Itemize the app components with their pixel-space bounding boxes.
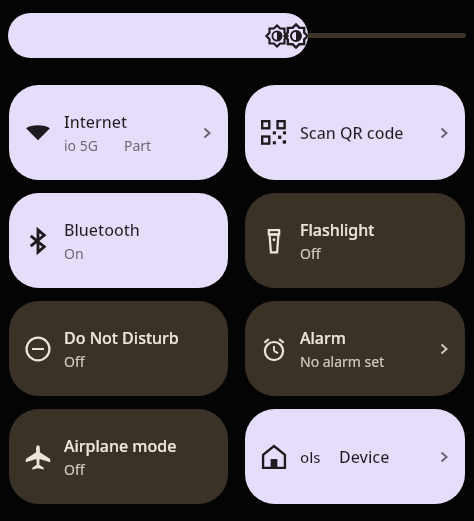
button[interactable]: Bluetooth [9,193,228,288]
staticText: Flashlight [300,219,375,241]
staticText: Alarm [300,327,346,349]
other: Open Internet settings [198,124,216,142]
staticText: Device [339,446,390,468]
other: Open Scan QR code settings [435,124,453,142]
button[interactable]: Scan QR code [245,85,465,180]
staticText: Part [124,136,152,155]
button[interactable]: Airplane mode [9,409,228,504]
button[interactable]: ols [245,409,465,504]
staticText: Scan QR code [300,122,404,144]
button[interactable]: Internet [9,85,228,180]
staticText: Off [64,460,85,479]
button[interactable]: Flashlight [245,193,465,288]
other: Open Alarm settings [435,340,453,358]
staticText: On [64,244,84,263]
button[interactable]: Do Not Disturb [9,301,228,396]
button[interactable]: Brightness [8,13,308,58]
staticText: Off [300,244,321,263]
staticText: Airplane mode [64,435,177,457]
staticText: Off [64,352,85,371]
staticText: ols [300,447,321,467]
staticText: No alarm set [300,352,385,371]
staticText: io 5G [64,136,98,155]
button[interactable]: Alarm [245,301,465,396]
staticText: Bluetooth [64,219,140,241]
staticText: Do Not Disturb [64,327,179,349]
other: Open Device settings [435,448,453,466]
staticText: Internet [64,111,128,133]
